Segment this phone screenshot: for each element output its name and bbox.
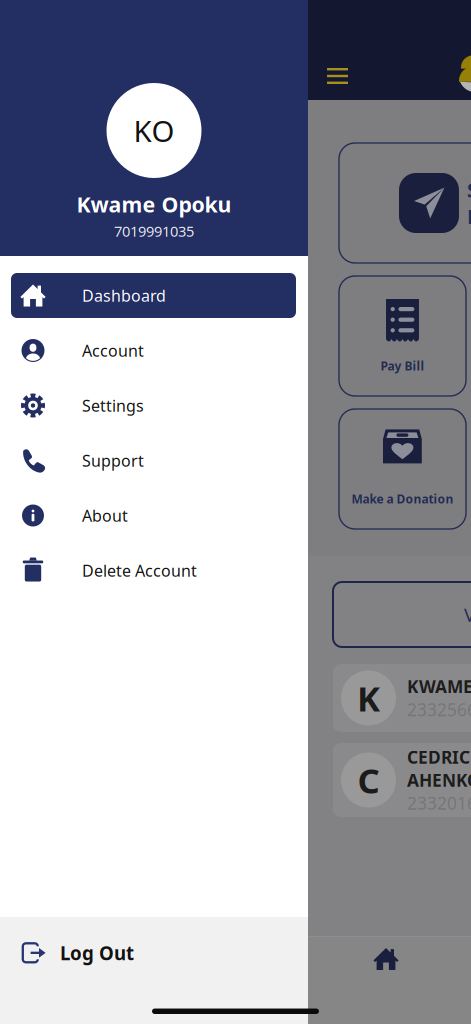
staticText: 233256619 xyxy=(407,698,471,721)
staticText: 7019991035 xyxy=(114,221,194,241)
staticText: Make a Donation xyxy=(351,491,453,507)
staticText: View All xyxy=(464,602,471,627)
staticText: Kwame Opoku xyxy=(76,190,231,218)
staticText: KWAME K xyxy=(407,675,471,698)
staticText: Account xyxy=(82,340,144,361)
staticText: KO xyxy=(133,111,174,150)
staticText: Pay Bill xyxy=(380,358,424,374)
staticText: C xyxy=(357,757,379,803)
button[interactable]: C xyxy=(333,743,471,817)
button[interactable]: Menu xyxy=(320,60,355,91)
staticText: CEDRIC K AHENKOR xyxy=(407,745,471,791)
button[interactable]: Log Out xyxy=(0,917,308,1024)
button[interactable]: Settings xyxy=(0,378,308,433)
staticText: K xyxy=(357,675,380,721)
staticText: Settings xyxy=(82,395,144,416)
button[interactable]: View All xyxy=(333,582,471,647)
button[interactable]: Send Money xyxy=(339,143,471,263)
button[interactable]: About xyxy=(0,488,308,543)
button[interactable]: Dashboard xyxy=(0,268,308,323)
button[interactable]: Pay Bill xyxy=(339,276,466,396)
button[interactable]: Make a Donation xyxy=(339,409,466,529)
button[interactable]: Home xyxy=(363,938,409,980)
button[interactable]: Support xyxy=(0,433,308,488)
staticText: Dashboard xyxy=(82,285,166,306)
staticText: 233201644 xyxy=(407,791,471,814)
button[interactable]: Account xyxy=(0,323,308,378)
staticText: Delete Account xyxy=(82,560,197,581)
staticText: Send Money xyxy=(467,176,471,229)
staticText: About xyxy=(82,505,128,526)
staticText: Log Out xyxy=(60,941,134,965)
staticText: Support xyxy=(82,450,144,471)
button[interactable]: K xyxy=(333,664,471,732)
button[interactable]: Delete Account xyxy=(0,543,308,598)
